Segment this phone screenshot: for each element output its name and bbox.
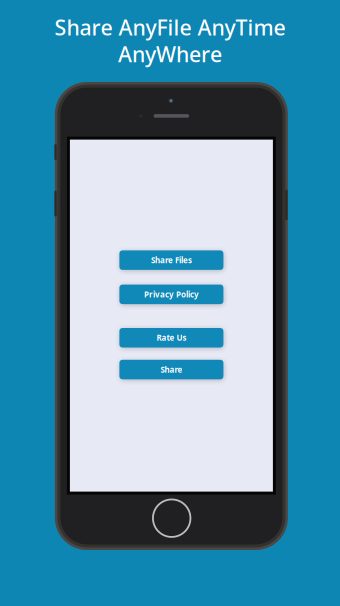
staticText: Share AnyFile AnyTime: [54, 13, 285, 41]
button[interactable]: Rate Us: [119, 328, 223, 347]
staticText: Share Files: [151, 255, 192, 265]
staticText: Share: [160, 364, 182, 375]
staticText: Rate Us: [156, 332, 186, 343]
button[interactable]: Share: [119, 360, 223, 379]
staticText: AnyWhere: [118, 40, 222, 68]
staticText: Privacy Policy: [144, 289, 199, 300]
button[interactable]: Share Files: [119, 250, 223, 270]
button[interactable]: Privacy Policy: [119, 285, 223, 304]
